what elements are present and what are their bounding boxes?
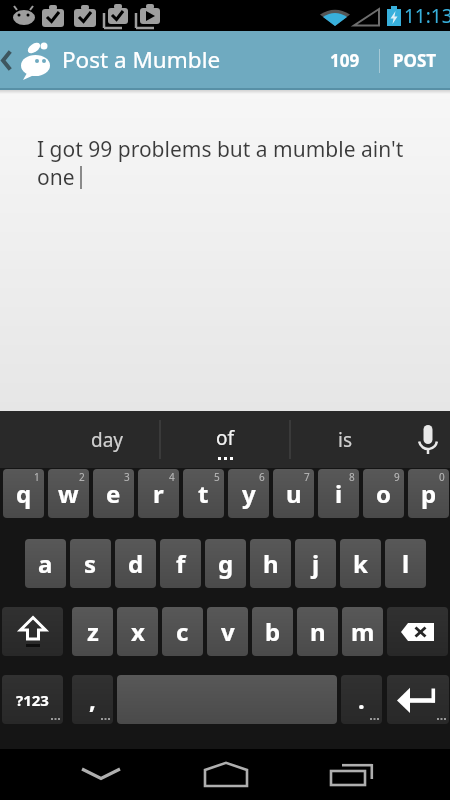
staticText: n — [310, 615, 326, 648]
staticText: h — [263, 547, 279, 580]
staticText: 1 — [34, 470, 40, 484]
button[interactable]: r — [138, 469, 179, 518]
button[interactable]: w — [48, 469, 89, 518]
button[interactable]: d — [115, 539, 156, 588]
staticText: day — [91, 427, 124, 453]
button[interactable]: I got 99 problems but a mumble ain't one — [0, 90, 450, 411]
staticText: l — [402, 547, 410, 580]
staticText: 0 — [439, 470, 445, 484]
staticText: o — [376, 477, 391, 510]
staticText: a — [38, 547, 53, 580]
button[interactable]: is — [290, 411, 400, 468]
button[interactable]: q — [3, 469, 44, 518]
button[interactable]: f — [160, 539, 201, 588]
button[interactable]: t — [183, 469, 224, 518]
button[interactable]: y — [228, 469, 269, 518]
staticText: m — [351, 615, 375, 648]
staticText: 8 — [349, 470, 355, 484]
button[interactable] — [387, 607, 448, 656]
button[interactable]: s — [70, 539, 111, 588]
staticText: 4 — [169, 470, 175, 484]
staticText: c — [176, 615, 189, 648]
button[interactable] — [309, 756, 394, 793]
staticText: k — [353, 547, 368, 580]
button[interactable]: i — [318, 469, 359, 518]
staticText: p — [421, 477, 437, 510]
staticText: . — [358, 683, 365, 716]
button[interactable]: z — [72, 607, 113, 656]
staticText: 9 — [394, 470, 400, 484]
staticText: I got 99 problems but a mumble ain't one — [37, 135, 404, 191]
button[interactable] — [58, 756, 143, 793]
staticText: y — [242, 477, 256, 510]
button[interactable]: g — [205, 539, 246, 588]
button[interactable]: day — [55, 411, 160, 468]
staticText: r — [153, 477, 164, 510]
staticText: s — [84, 547, 97, 580]
staticText: e — [106, 477, 121, 510]
button[interactable]: v — [207, 607, 248, 656]
button[interactable]: p — [408, 469, 449, 518]
button[interactable]: l — [385, 539, 426, 588]
staticText: d — [128, 547, 144, 580]
button[interactable] — [2, 607, 63, 656]
staticText: z — [87, 615, 99, 648]
staticText: j — [312, 547, 320, 580]
staticText: t — [198, 477, 209, 510]
button[interactable]: o — [363, 469, 404, 518]
staticText: g — [218, 547, 234, 580]
staticText: 11:13 — [404, 3, 450, 29]
staticText: , — [89, 683, 96, 716]
staticText: 3 — [124, 470, 130, 484]
staticText: 7 — [304, 470, 310, 484]
button[interactable]: u — [273, 469, 314, 518]
button[interactable]: a — [25, 539, 66, 588]
staticText: q — [16, 477, 32, 510]
staticText: x — [131, 615, 145, 648]
button[interactable]: j — [295, 539, 336, 588]
button[interactable]: ?123 — [2, 675, 63, 724]
button[interactable]: n — [297, 607, 338, 656]
staticText: u — [286, 477, 302, 510]
staticText: f — [176, 547, 186, 580]
staticText: 5 — [214, 470, 220, 484]
staticText: POST — [393, 49, 437, 72]
staticText: 2 — [79, 470, 85, 484]
staticText: ?123 — [16, 690, 49, 710]
button[interactable]: POST — [380, 31, 450, 90]
button[interactable] — [183, 756, 268, 793]
staticText: v — [221, 615, 235, 648]
button[interactable]: c — [162, 607, 203, 656]
button[interactable]: of — [160, 411, 290, 468]
staticText: of — [216, 425, 235, 451]
staticText: b — [265, 615, 281, 648]
staticText: 6 — [259, 470, 265, 484]
button[interactable]: . — [341, 675, 382, 724]
button[interactable] — [387, 675, 449, 724]
button[interactable] — [0, 31, 58, 90]
button[interactable]: m — [342, 607, 383, 656]
button[interactable]: e — [93, 469, 134, 518]
staticText: Post a Mumble — [62, 44, 221, 75]
button[interactable]: x — [117, 607, 158, 656]
staticText: 109 — [330, 49, 360, 72]
button[interactable]: b — [252, 607, 293, 656]
button[interactable]: h — [250, 539, 291, 588]
button[interactable]: , — [72, 675, 113, 724]
staticText: i — [335, 477, 343, 510]
staticText: w — [58, 477, 79, 510]
staticText: is — [338, 427, 353, 453]
button[interactable] — [117, 675, 337, 724]
button[interactable]: k — [340, 539, 381, 588]
